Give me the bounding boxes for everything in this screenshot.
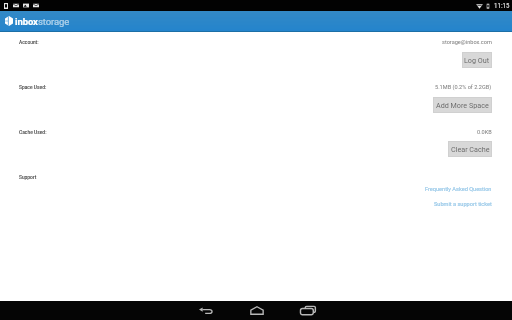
staticText: Space Used: bbox=[19, 84, 47, 91]
staticText: Submit a support ticket bbox=[434, 201, 492, 208]
staticText: Add More Space bbox=[436, 101, 489, 109]
staticText: Clear Cache bbox=[451, 145, 490, 153]
button[interactable]: Frequently Asked Question bbox=[425, 186, 492, 193]
button[interactable]: Log Out bbox=[462, 52, 492, 68]
staticText: Account: bbox=[19, 39, 39, 46]
staticText: 5.1MB (0.2% of 2.2GB) bbox=[435, 84, 492, 91]
button[interactable]: Submit a support ticket bbox=[434, 201, 492, 208]
button[interactable]: Add More Space bbox=[433, 97, 492, 113]
button[interactable]: Home bbox=[241, 301, 272, 320]
staticText: storage bbox=[38, 16, 70, 27]
staticText: 11:15 bbox=[494, 2, 510, 10]
staticText: Frequently Asked Question bbox=[425, 186, 492, 193]
button[interactable]: Recent apps bbox=[292, 301, 323, 320]
staticText: Cache Used: bbox=[19, 129, 47, 136]
staticText: Log Out bbox=[464, 56, 490, 64]
staticText: storage@inbox.com bbox=[442, 39, 492, 46]
staticText: Support bbox=[19, 174, 37, 181]
button[interactable]: Clear Cache bbox=[448, 141, 492, 157]
staticText: 0.0KB bbox=[477, 129, 492, 136]
button[interactable]: Back bbox=[190, 301, 221, 320]
staticText: inbox bbox=[15, 16, 38, 27]
